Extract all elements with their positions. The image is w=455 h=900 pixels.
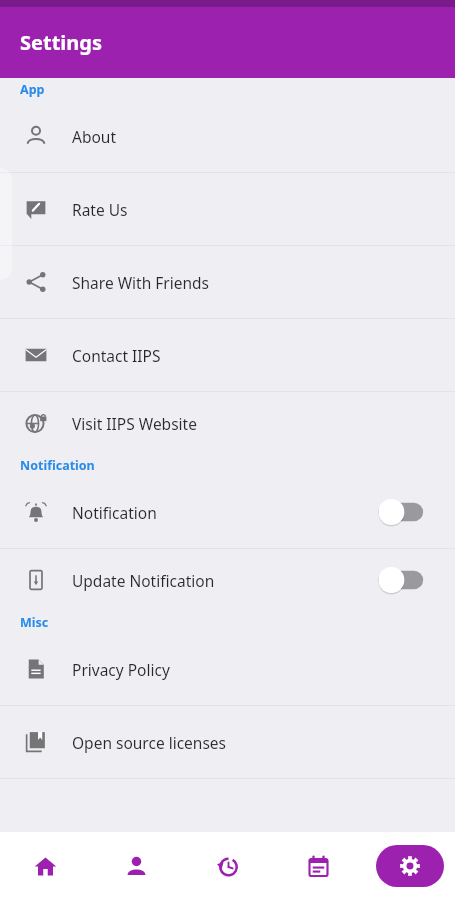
button[interactable]: Update Notification (0, 549, 455, 611)
button[interactable]: Settings (376, 845, 444, 887)
staticText: Contact IIPS (72, 345, 161, 366)
staticText: App (20, 81, 45, 98)
button[interactable]: History (182, 832, 273, 900)
button[interactable]: Calendar (273, 832, 364, 900)
button[interactable]: Contact IIPS (0, 319, 455, 391)
staticText: Open source licenses (72, 732, 227, 753)
staticText: Visit IIPS Website (72, 413, 197, 434)
staticText: Update Notification (72, 570, 215, 591)
button[interactable]: Profile (91, 832, 182, 900)
button[interactable]: Visit IIPS Website (0, 392, 455, 454)
button[interactable]: About (0, 100, 455, 172)
staticText: Rate Us (72, 199, 128, 220)
staticText: Settings (20, 29, 102, 56)
button[interactable]: Notification toggle (375, 492, 455, 532)
staticText: Share With Friends (72, 272, 209, 293)
button[interactable]: Rate Us (0, 173, 455, 245)
button[interactable]: Home (0, 832, 91, 900)
button[interactable]: Notification (0, 476, 455, 548)
staticText: Notification (72, 502, 157, 523)
button[interactable]: Share With Friends (0, 246, 455, 318)
staticText: Notification (20, 457, 95, 474)
button[interactable]: Open source licenses (0, 706, 455, 778)
staticText: Misc (20, 614, 49, 631)
staticText: Privacy Policy (72, 659, 170, 680)
button[interactable]: Update Notification toggle (375, 560, 455, 600)
button[interactable]: Privacy Policy (0, 633, 455, 705)
staticText: About (72, 126, 116, 147)
